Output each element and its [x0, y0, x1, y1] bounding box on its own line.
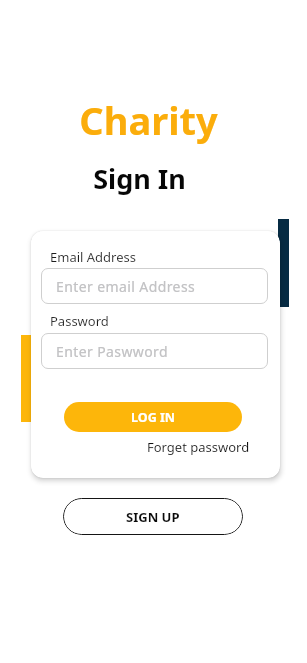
button[interactable]: Enter Paswword: [41, 333, 268, 369]
staticText: Enter email Address: [56, 277, 196, 296]
button[interactable]: Forget password: [147, 438, 250, 456]
staticText: Email Address: [50, 248, 136, 266]
staticText: SIGN UP: [126, 508, 180, 526]
staticText: LOG IN: [131, 409, 175, 426]
button[interactable]: LOG IN: [64, 402, 242, 432]
button[interactable]: SIGN UP: [63, 498, 243, 535]
staticText: Sign In: [0, 160, 293, 197]
staticText: Charity: [0, 94, 302, 146]
button[interactable]: Enter email Address: [41, 268, 268, 304]
staticText: Enter Paswword: [56, 342, 169, 361]
staticText: Password: [50, 312, 109, 330]
